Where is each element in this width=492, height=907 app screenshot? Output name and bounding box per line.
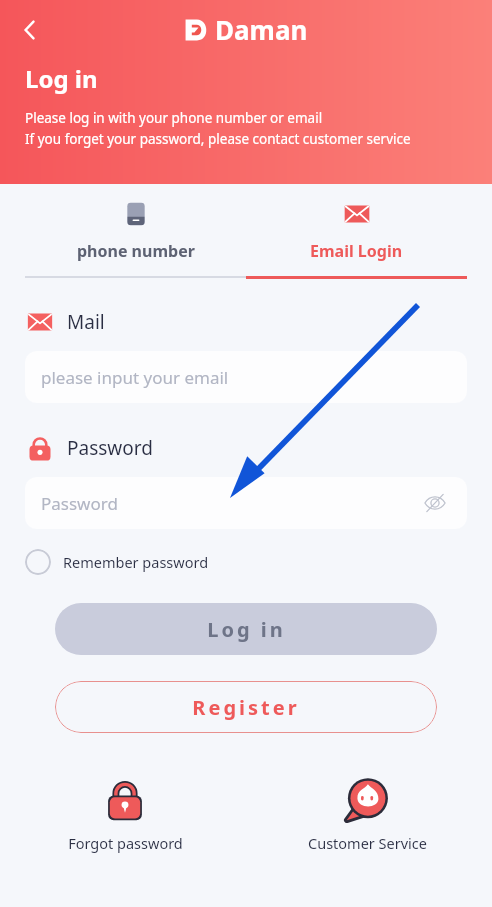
staticText: Password: [41, 492, 118, 515]
button[interactable]: Forgot password: [50, 773, 200, 857]
button[interactable]: Password: [25, 477, 467, 529]
staticText: Daman: [215, 12, 308, 47]
button[interactable]: Log in: [55, 603, 437, 655]
staticText: Remember password: [63, 552, 209, 572]
button[interactable]: Show password: [419, 487, 451, 519]
button[interactable]: please input your email: [25, 351, 467, 403]
staticText: If you forget your password, please cont…: [25, 130, 411, 148]
button[interactable]: Remember password: [25, 549, 209, 575]
staticText: Register: [192, 694, 300, 721]
staticText: Log in: [25, 62, 98, 95]
staticText: Forgot password: [68, 833, 183, 853]
staticText: Mail: [67, 309, 105, 335]
button[interactable]: Register: [55, 681, 437, 733]
button[interactable]: Customer Service: [292, 773, 442, 857]
staticText: Customer Service: [308, 833, 427, 853]
staticText: please input your email: [41, 366, 229, 389]
button[interactable]: Back: [8, 8, 52, 52]
staticText: phone number: [77, 240, 195, 262]
staticText: Password: [67, 435, 153, 461]
staticText: Please log in with your phone number or …: [25, 109, 323, 127]
button[interactable]: Email Login: [246, 194, 467, 268]
staticText: Log in: [207, 616, 286, 643]
button[interactable]: phone number: [25, 194, 246, 268]
staticText: Email Login: [310, 240, 403, 262]
